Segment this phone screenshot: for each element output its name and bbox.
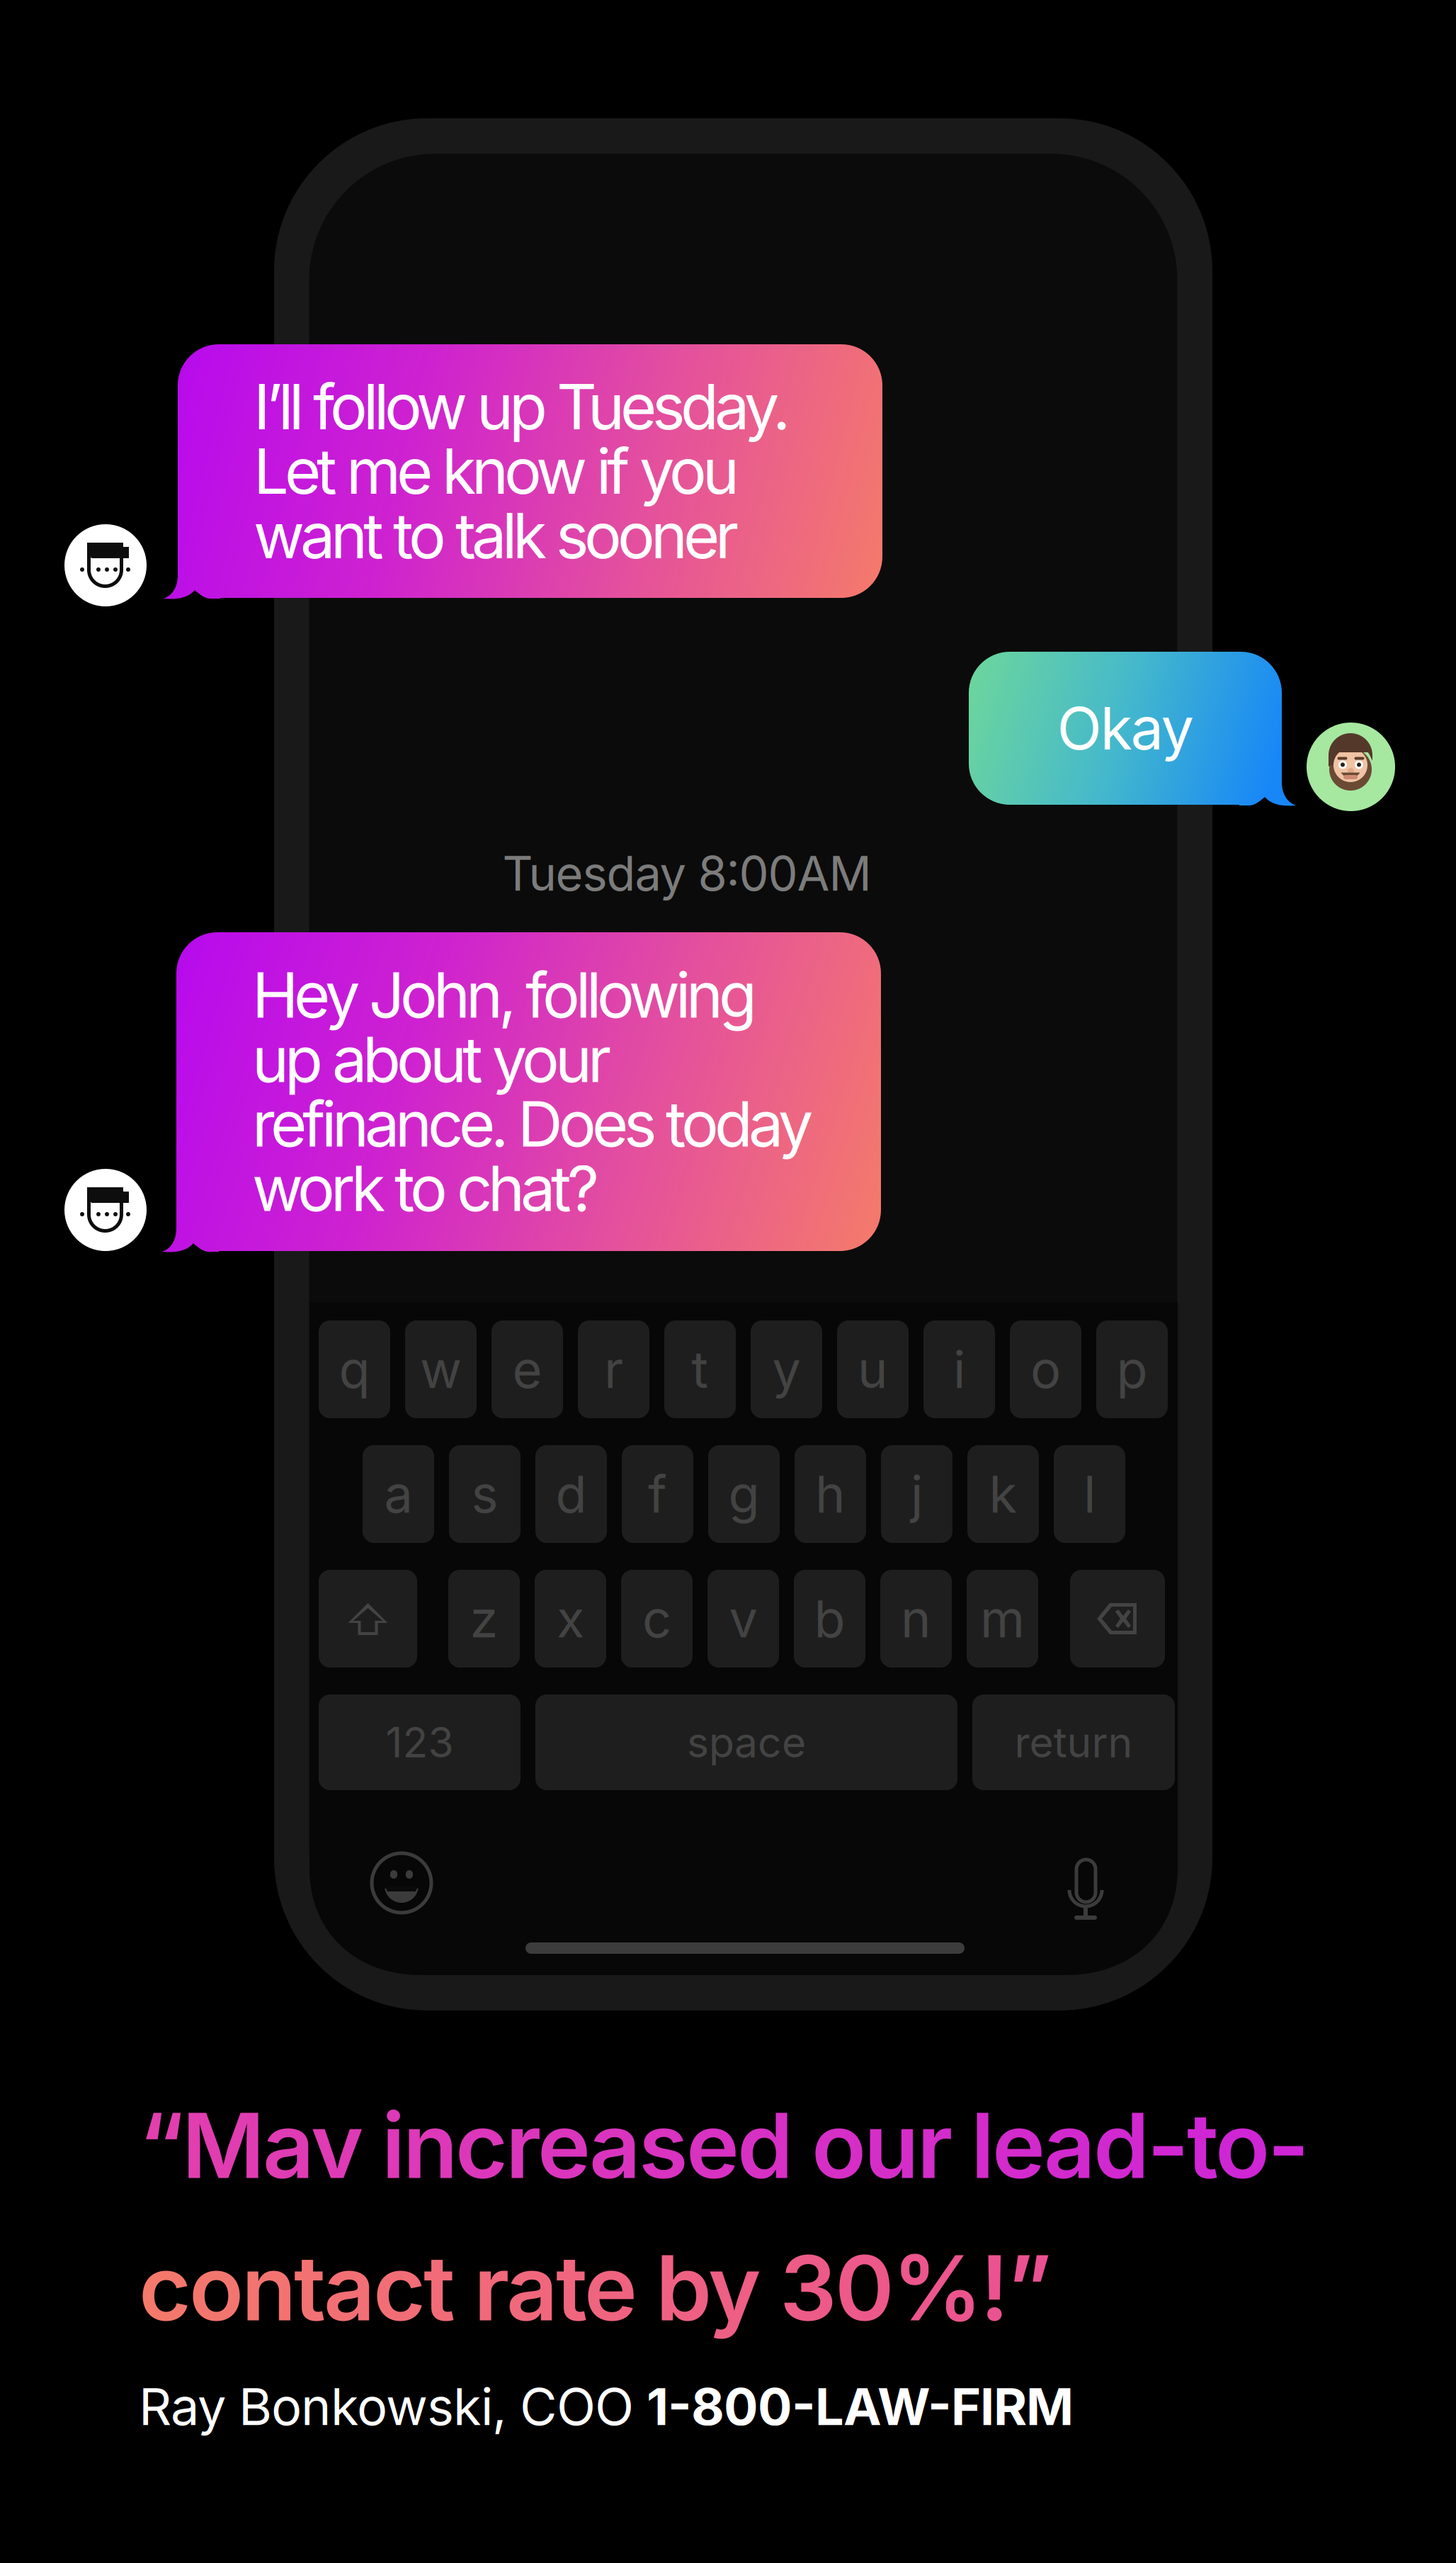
button[interactable]: Delete	[1070, 1570, 1165, 1668]
staticText: t	[692, 1338, 709, 1400]
button[interactable]: c	[621, 1570, 693, 1668]
button[interactable]: e	[491, 1320, 563, 1418]
staticText: s	[471, 1463, 498, 1525]
staticText: x	[557, 1588, 584, 1650]
staticText: Tuesday 8:00AM	[502, 845, 871, 902]
button[interactable]: h	[795, 1445, 866, 1543]
button[interactable]: q	[319, 1320, 390, 1418]
staticText: w	[420, 1338, 462, 1400]
staticText: Hey John, following	[252, 957, 757, 1033]
button[interactable]: return	[972, 1694, 1175, 1790]
button[interactable]: d	[535, 1445, 607, 1543]
staticText: I’ll follow up Tuesday.	[254, 369, 790, 444]
button[interactable]: m	[967, 1570, 1038, 1668]
staticText: want to talk sooner	[254, 498, 739, 573]
button[interactable]: k	[967, 1445, 1039, 1543]
staticText: i	[953, 1338, 965, 1400]
button[interactable]: Emoji keyboard	[372, 1853, 431, 1913]
staticText: f	[648, 1463, 667, 1525]
staticText: 123	[386, 1717, 454, 1767]
staticText: z	[470, 1588, 498, 1650]
button[interactable]: f	[622, 1445, 693, 1543]
staticText: d	[556, 1463, 587, 1525]
button[interactable]: z	[448, 1570, 520, 1668]
staticText: work to chat?	[252, 1151, 599, 1226]
staticText: v	[729, 1588, 757, 1650]
button[interactable]: v	[707, 1570, 779, 1668]
button[interactable]: space	[535, 1694, 957, 1790]
staticText: Let me know if you	[254, 433, 739, 509]
staticText: space	[687, 1717, 806, 1767]
staticText: l	[1084, 1463, 1096, 1525]
staticText: refinance. Does today	[252, 1086, 813, 1162]
staticText: y	[772, 1338, 801, 1400]
button[interactable]: u	[837, 1320, 909, 1418]
staticText: up about your	[252, 1022, 611, 1097]
button[interactable]: p	[1096, 1320, 1168, 1418]
button[interactable]: t	[664, 1320, 736, 1418]
button[interactable]: o	[1010, 1320, 1081, 1418]
button[interactable]: s	[449, 1445, 521, 1543]
button[interactable]: i	[923, 1320, 995, 1418]
staticText: Okay	[1057, 693, 1194, 764]
button[interactable]: 123	[319, 1694, 521, 1790]
button[interactable]: g	[708, 1445, 780, 1543]
staticText: b	[814, 1588, 845, 1650]
staticText: q	[339, 1338, 370, 1400]
button[interactable]: r	[578, 1320, 649, 1418]
staticText: p	[1116, 1338, 1148, 1400]
staticText: c	[642, 1588, 671, 1650]
staticText: o	[1030, 1338, 1061, 1400]
button[interactable]: w	[405, 1320, 477, 1418]
button[interactable]: n	[880, 1570, 952, 1668]
staticText: m	[980, 1588, 1025, 1650]
staticText: g	[728, 1463, 760, 1525]
staticText: h	[815, 1463, 846, 1525]
staticText: return	[1014, 1717, 1133, 1767]
button[interactable]: l	[1054, 1445, 1125, 1543]
button[interactable]: x	[535, 1570, 606, 1668]
staticText: r	[604, 1338, 623, 1400]
staticText: e	[512, 1338, 542, 1400]
staticText: j	[911, 1463, 923, 1525]
button[interactable]: j	[881, 1445, 952, 1543]
button[interactable]: Dictation	[1068, 1848, 1103, 1916]
staticText: n	[901, 1588, 931, 1650]
staticText: k	[989, 1463, 1017, 1525]
button[interactable]: a	[363, 1445, 434, 1543]
staticText: Ray Bonkowski, COO 1-800-LAW-FIRM	[139, 2376, 1074, 2436]
staticText: a	[384, 1463, 413, 1525]
button[interactable]: b	[794, 1570, 865, 1668]
button[interactable]: y	[751, 1320, 822, 1418]
button[interactable]: Shift	[319, 1570, 417, 1668]
staticText: u	[858, 1338, 888, 1400]
